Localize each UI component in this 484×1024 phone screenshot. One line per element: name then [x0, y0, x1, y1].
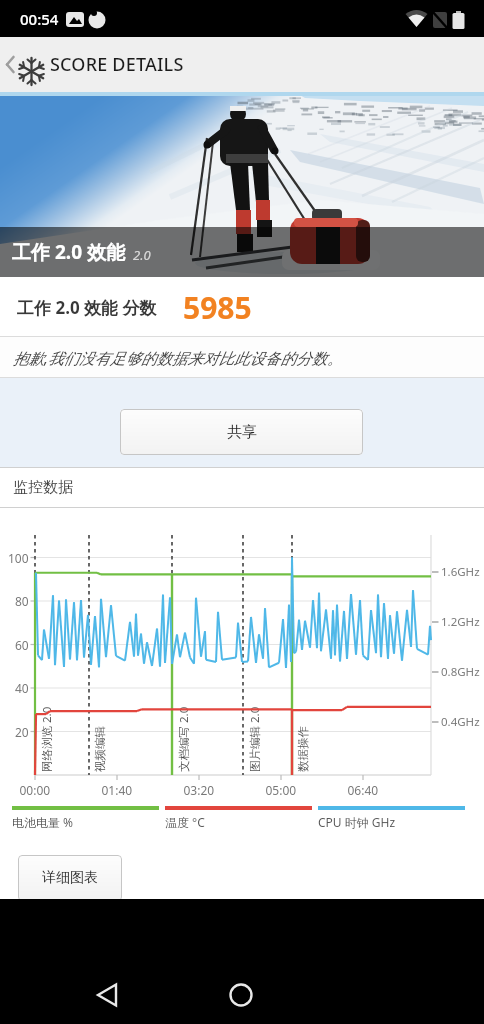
staticText: 工作 2.0 效能 [12, 239, 125, 265]
staticText: 2.0 [133, 246, 151, 264]
button[interactable] [90, 978, 126, 1014]
button[interactable] [223, 977, 259, 1013]
staticText: CPU 时钟 GHz [318, 814, 396, 830]
staticText: 电池电量 % [12, 814, 74, 830]
staticText: SCORE DETAILS [50, 52, 184, 77]
button[interactable]: 详细图表 [18, 855, 122, 901]
staticText: 监控数据 [13, 478, 73, 497]
staticText: 工作 2.0 效能 分数 [17, 296, 157, 319]
staticText: 00:54 [20, 9, 59, 29]
staticText: 共享 [227, 423, 257, 442]
button[interactable]: 共享 [120, 409, 363, 455]
staticText: 详细图表 [42, 869, 98, 887]
button[interactable] [0, 37, 24, 92]
staticText: 5985 [183, 287, 252, 328]
staticText: 抱歉,我们没有足够的数据来对比此设备的分数。 [13, 347, 343, 368]
staticText: 温度 °C [165, 814, 205, 830]
